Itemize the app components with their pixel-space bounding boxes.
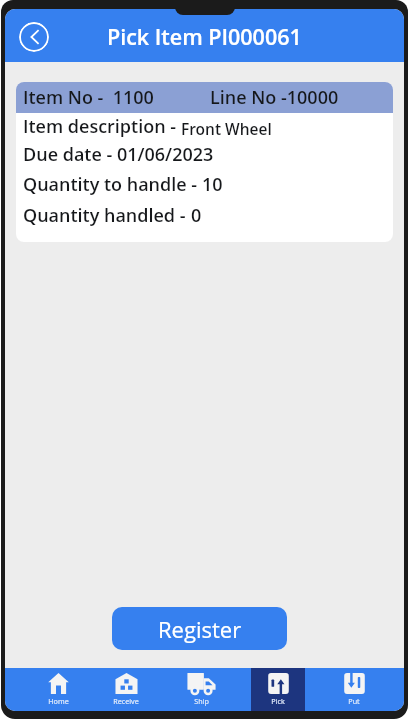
staticText: Put bbox=[348, 696, 360, 706]
staticText: Quantity to handle - bbox=[23, 172, 202, 197]
staticText: Item description - bbox=[23, 114, 181, 139]
button[interactable]: Home bbox=[31, 668, 85, 711]
staticText: Due date - bbox=[23, 142, 117, 167]
staticText: 10 bbox=[202, 172, 223, 197]
button[interactable]: Back bbox=[19, 22, 49, 52]
button[interactable]: Pick bbox=[251, 668, 305, 711]
staticText: Line No -10000 bbox=[210, 85, 339, 110]
staticText: Ship bbox=[194, 696, 209, 706]
staticText: Front Wheel bbox=[181, 118, 272, 139]
button[interactable]: Put bbox=[327, 668, 381, 711]
staticText: Quantity handled - bbox=[23, 203, 191, 228]
button[interactable]: Receive bbox=[99, 668, 153, 711]
staticText: Receive bbox=[113, 696, 139, 706]
staticText: 0 bbox=[191, 203, 202, 228]
staticText: Item No - 1100 bbox=[23, 85, 154, 110]
staticText: Home bbox=[48, 696, 69, 706]
staticText: Register bbox=[158, 614, 242, 644]
button[interactable]: Register bbox=[112, 607, 287, 650]
button[interactable]: Ship bbox=[174, 668, 228, 711]
staticText: Pick Item PI000061 bbox=[107, 22, 302, 51]
staticText: Pick bbox=[271, 696, 285, 706]
staticText: 01/06/2023 bbox=[117, 142, 214, 167]
